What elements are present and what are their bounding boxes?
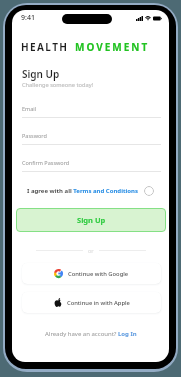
button[interactable]: Already have an account? Log In: [45, 330, 137, 338]
button[interactable]: I agree with all Terms and Conditions: [22, 186, 159, 196]
staticText: Sign Up: [22, 67, 60, 81]
staticText: Confirm Password: [22, 159, 70, 166]
button[interactable]: Sign Up: [16, 208, 166, 232]
button[interactable]: Continue with Google: [22, 263, 161, 284]
staticText: Sign Up: [77, 215, 106, 225]
staticText: Password: [22, 132, 47, 139]
staticText: Challenge someone today!: [22, 81, 94, 89]
staticText: Email: [22, 105, 37, 112]
staticText: I agree with all Terms and Conditions: [27, 187, 139, 195]
staticText: or: [88, 247, 94, 254]
button[interactable]: Continue in with Apple: [22, 292, 161, 313]
staticText: HEALTH: [21, 40, 69, 54]
staticText: Continue with Google: [68, 270, 129, 278]
staticText: Already have an account? Log In: [45, 330, 137, 338]
staticText: MOVEMENT: [75, 40, 150, 54]
staticText: 9:41: [21, 13, 35, 23]
staticText: Continue in with Apple: [67, 299, 130, 307]
